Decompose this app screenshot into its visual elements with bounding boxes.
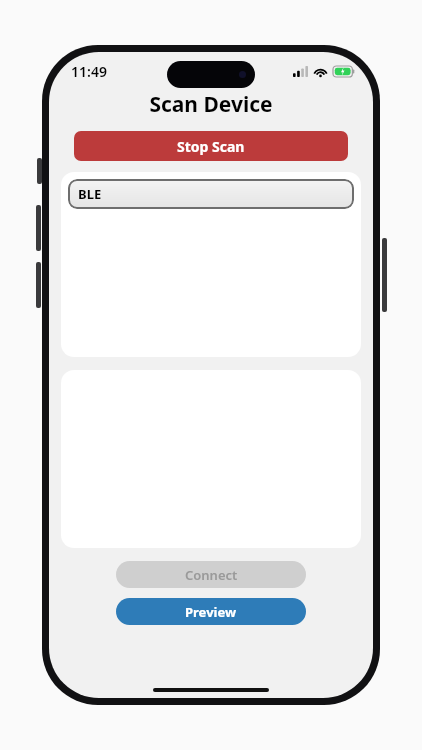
staticText: Preview	[185, 603, 237, 621]
staticText: Stop Scan	[177, 137, 245, 156]
staticText: BLE	[78, 185, 102, 203]
button[interactable]: BLE	[68, 179, 354, 209]
staticText: Scan Device	[49, 90, 373, 119]
button[interactable]: Preview	[116, 598, 306, 625]
other: Cellular signal	[293, 66, 308, 77]
other: Wi-Fi	[313, 66, 328, 77]
staticText: Connect	[185, 566, 238, 584]
button[interactable]: Connect	[116, 561, 306, 588]
staticText: 11:49	[71, 62, 107, 81]
other: Battery charging	[333, 66, 355, 77]
button[interactable]: Stop Scan	[74, 131, 348, 161]
